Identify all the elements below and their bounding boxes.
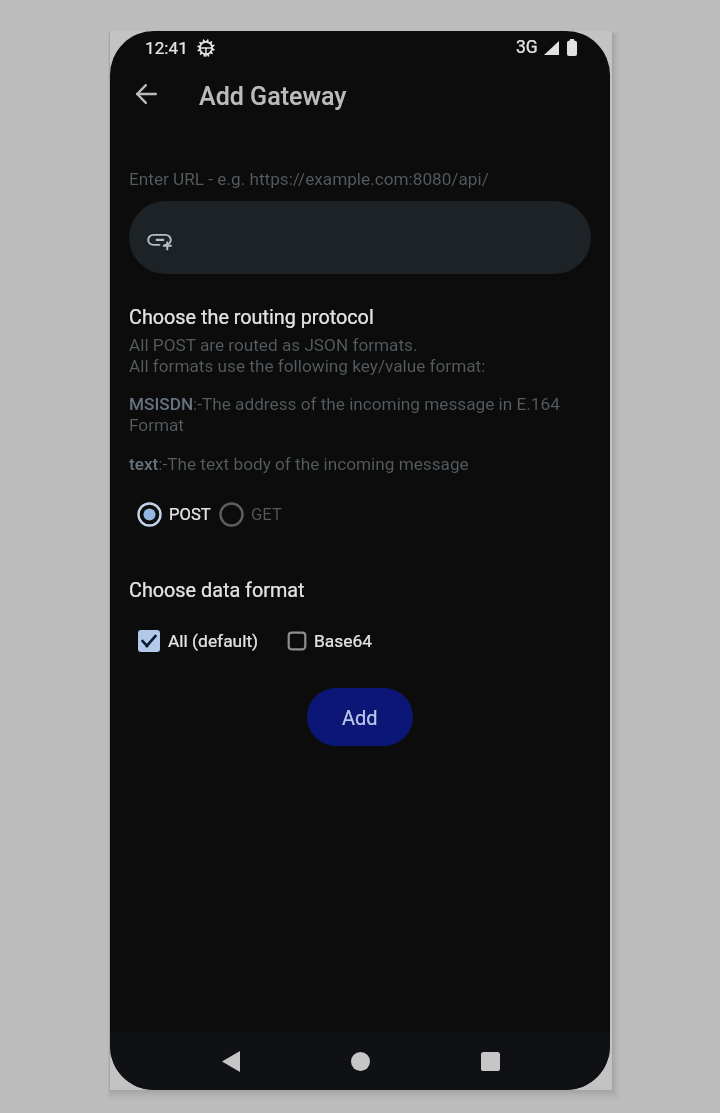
staticText: 12:41 [145, 38, 188, 58]
button[interactable]: All (default) [138, 630, 259, 652]
staticText: Choose data format [129, 579, 305, 602]
staticText: All (default) [168, 631, 259, 651]
button[interactable]: POST [137, 502, 211, 527]
staticText: Add [342, 706, 378, 729]
button[interactable]: Home [336, 1037, 384, 1085]
staticText: MSISDN:-The address of the incoming mess… [129, 394, 589, 435]
button[interactable]: Add [307, 688, 413, 746]
staticText: All POST are routed as JSON formats. All… [129, 335, 486, 376]
button[interactable]: Back [207, 1037, 255, 1085]
staticText: Add Gateway [199, 82, 347, 111]
button[interactable]: Base64 [286, 630, 373, 652]
staticText: POST [169, 505, 211, 524]
staticText: Enter URL - e.g. https://example.com:808… [129, 169, 489, 189]
staticText: Base64 [314, 631, 373, 651]
button[interactable]: GET [219, 502, 282, 527]
staticText: GET [251, 505, 282, 524]
button[interactable]: Back [122, 70, 170, 118]
button[interactable]: Recent apps [466, 1037, 514, 1085]
button[interactable] [129, 201, 591, 274]
staticText: Choose the routing protocol [129, 306, 374, 329]
staticText: text:-The text body of the incoming mess… [129, 454, 469, 474]
staticText: 3G [516, 37, 538, 58]
